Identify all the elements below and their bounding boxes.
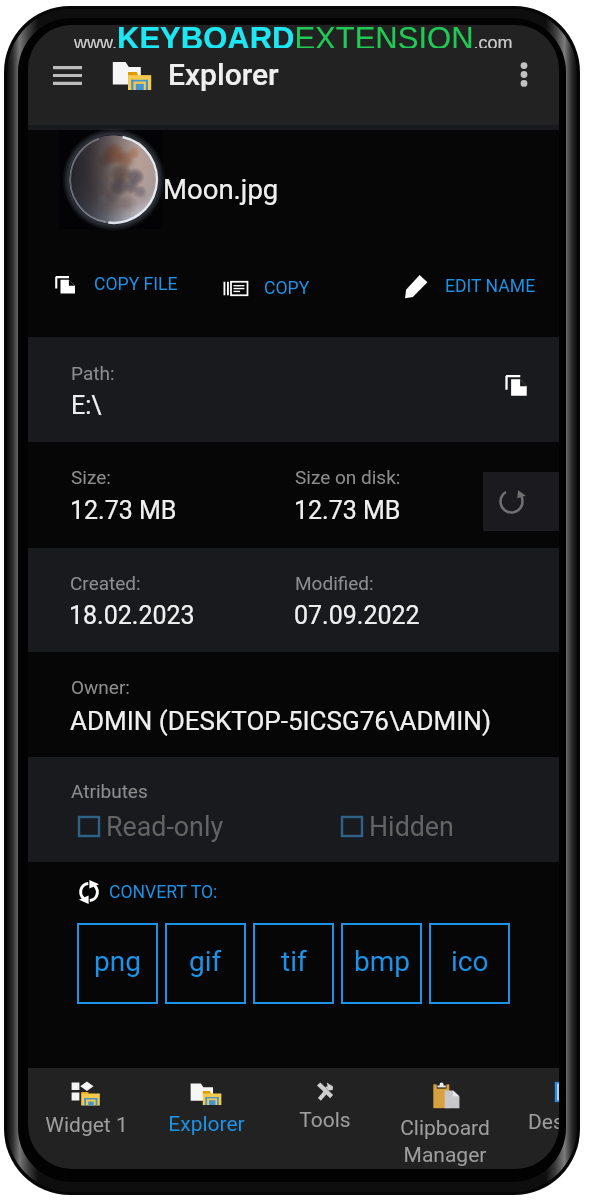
button[interactable]: Clipboard Manager [387, 1068, 503, 1169]
button[interactable]: png [77, 923, 158, 1004]
button[interactable]: Widget 1 [28, 1068, 144, 1169]
button[interactable]: CONVERT TO: [79, 872, 218, 912]
staticText: CONVERT TO: [109, 882, 218, 903]
button[interactable]: bmp [341, 923, 422, 1004]
staticText: Created: [70, 572, 141, 594]
button[interactable]: Open navigation menu [41, 49, 93, 101]
staticText: 18.02.2023 [69, 601, 195, 630]
staticText: ADMIN (DESKTOP-5ICSG76\ADMIN) [70, 706, 491, 736]
staticText: ico [451, 945, 489, 978]
button[interactable]: ico [429, 923, 510, 1004]
staticText: Clipboard Manager [400, 1116, 490, 1167]
staticText: 07.09.2022 [294, 601, 420, 630]
button[interactable]: More options [497, 47, 551, 101]
button[interactable]: EDIT NAME [404, 262, 536, 310]
button[interactable]: Copy path [487, 356, 545, 414]
staticText: E:\ [71, 391, 102, 420]
button[interactable]: Read-only [79, 809, 224, 843]
staticText: COPY FILE [94, 274, 178, 295]
staticText: Atributes [71, 780, 148, 802]
staticText: Explorer [168, 1112, 245, 1137]
staticText: Desktop [528, 1110, 559, 1135]
staticText: bmp [354, 945, 410, 978]
staticText: Tools [299, 1108, 351, 1133]
staticText: Path: [71, 362, 115, 384]
button[interactable]: gif [165, 923, 246, 1004]
button[interactable]: COPY FILE [53, 260, 178, 308]
staticText: www.KEYBOARDEXTENSION.com [74, 25, 513, 48]
staticText: Owner: [71, 676, 130, 698]
staticText: Size on disk: [295, 466, 401, 488]
staticText: Moon.jpg [163, 173, 279, 205]
staticText: Size: [71, 466, 111, 488]
button[interactable]: Tools [267, 1068, 383, 1169]
staticText: gif [189, 945, 222, 978]
button[interactable]: COPY [223, 264, 310, 312]
staticText: png [94, 945, 141, 978]
staticText: 12.73 MB [294, 496, 401, 525]
staticText: Hidden [369, 811, 454, 842]
button[interactable]: Hidden [342, 809, 454, 843]
staticText: EDIT NAME [445, 276, 536, 297]
button[interactable]: Explorer [148, 1068, 264, 1169]
button[interactable]: tif [253, 923, 334, 1004]
staticText: Read-only [106, 811, 224, 842]
staticText: Modified: [295, 572, 374, 594]
button[interactable]: Refresh size [483, 472, 559, 531]
staticText: tif [281, 945, 307, 978]
staticText: 12.73 MB [70, 496, 177, 525]
staticText: COPY [264, 278, 310, 299]
staticText: Explorer [168, 57, 279, 92]
button[interactable]: Desktop [508, 1068, 559, 1169]
staticText: Widget 1 [45, 1113, 128, 1138]
